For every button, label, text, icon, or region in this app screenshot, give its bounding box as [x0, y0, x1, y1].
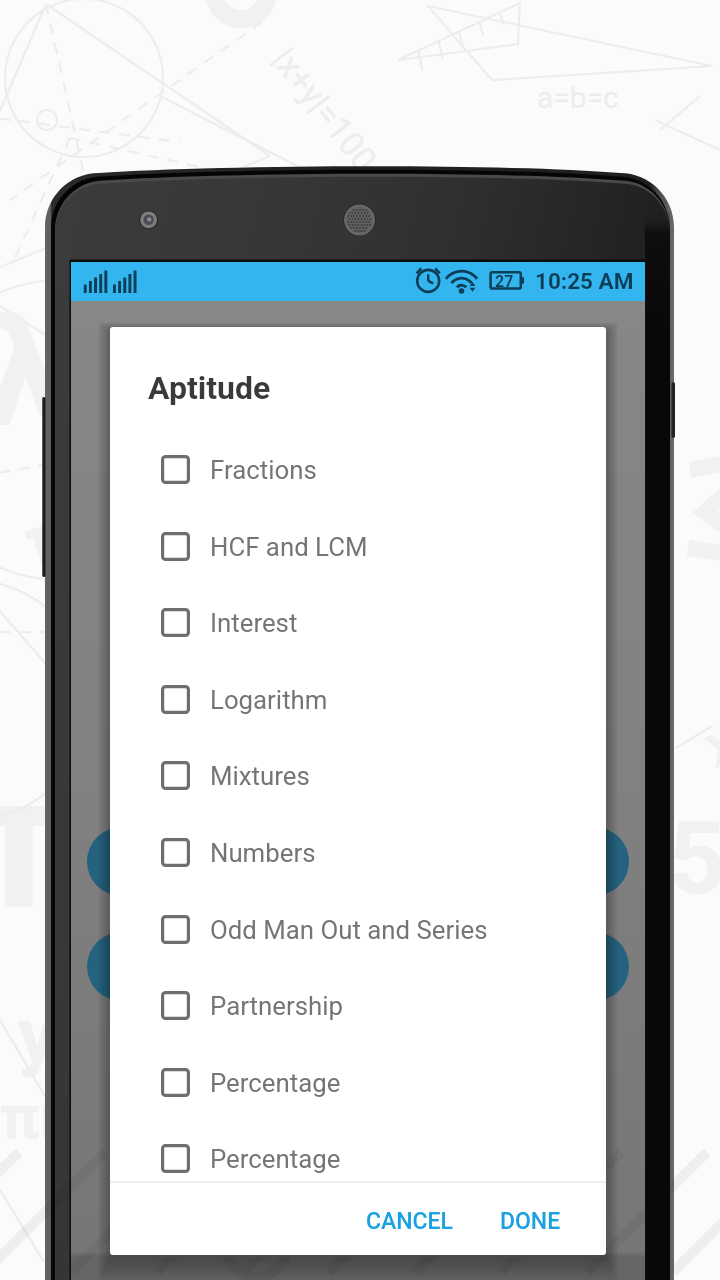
- staticText: DONE: [500, 1208, 561, 1235]
- staticText: Partnership: [210, 991, 343, 1021]
- button[interactable]: HCF and LCM: [110, 508, 606, 585]
- button[interactable]: DONE: [486, 1196, 575, 1247]
- button[interactable]: Partnership: [110, 967, 606, 1044]
- button[interactable]: Numbers: [110, 814, 606, 891]
- staticText: HCF and LCM: [210, 532, 368, 562]
- button[interactable]: Fractions: [110, 431, 606, 508]
- button[interactable]: Mixtures: [110, 737, 606, 814]
- staticText: Percentage: [210, 1068, 341, 1098]
- staticText: Numbers: [210, 838, 316, 868]
- button[interactable]: Percentage: [110, 1044, 606, 1121]
- staticText: 27: [495, 272, 514, 291]
- staticText: CANCEL: [366, 1208, 454, 1235]
- staticText: Mixtures: [210, 761, 310, 791]
- button[interactable]: Interest: [110, 584, 606, 661]
- staticText: Fractions: [210, 455, 317, 485]
- button[interactable]: Odd Man Out and Series: [110, 891, 606, 968]
- button[interactable]: CANCEL: [352, 1196, 468, 1247]
- staticText: Percentage: [210, 1144, 341, 1174]
- staticText: Logarithm: [210, 685, 328, 715]
- button[interactable]: Percentage: [110, 1120, 606, 1197]
- staticText: Aptitude: [148, 369, 271, 407]
- staticText: Interest: [210, 608, 298, 638]
- staticText: 10:25 AM: [535, 268, 634, 294]
- staticText: Odd Man Out and Series: [210, 915, 488, 945]
- button[interactable]: Logarithm: [110, 661, 606, 738]
